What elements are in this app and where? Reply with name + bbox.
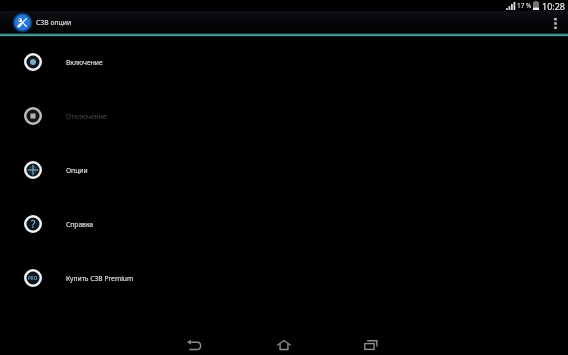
button[interactable]: Отключение [0, 89, 568, 143]
staticText: Справка [66, 220, 94, 229]
staticText: Отключение [66, 112, 107, 121]
button[interactable]: Home [268, 329, 300, 355]
staticText: Купить СЗВ Premium [66, 274, 134, 283]
staticText: Опции [66, 166, 88, 175]
staticText: СЗВ опции [36, 18, 72, 27]
button[interactable]: ? [0, 197, 568, 251]
staticText: 10:28 [542, 0, 566, 11]
button[interactable]: Recents [355, 329, 387, 355]
button[interactable]: Back [178, 329, 210, 355]
staticText: 17 % [517, 1, 532, 10]
staticText: ? [31, 217, 36, 231]
staticText: Включение [66, 58, 103, 67]
button[interactable]: Опции [0, 143, 568, 197]
button[interactable]: More options [543, 11, 567, 34]
button[interactable]: PRO [0, 251, 568, 305]
button[interactable]: Включение [0, 35, 568, 89]
staticText: PRO [28, 275, 38, 281]
